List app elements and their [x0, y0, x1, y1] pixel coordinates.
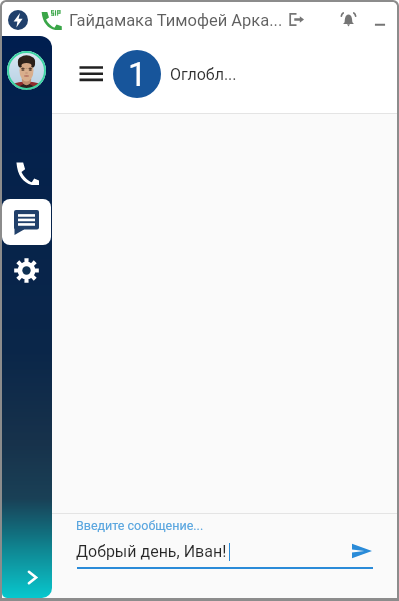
button[interactable]: Calls: [14, 160, 40, 186]
staticText: Введите сообщение...: [76, 518, 204, 533]
button[interactable]: Notifications: [336, 7, 360, 31]
button[interactable]: Minimize: [369, 9, 391, 31]
button[interactable]: Chats: [2, 199, 51, 245]
staticText: Оглобл...: [170, 65, 237, 84]
button[interactable]: Menu: [74, 61, 108, 87]
button[interactable]: Settings: [13, 257, 40, 284]
staticText: 1: [128, 55, 147, 94]
button[interactable]: Profile: [7, 51, 46, 90]
staticText: Гайдамака Тимофей Арка...: [69, 11, 283, 30]
button[interactable]: Contact 1: [113, 50, 161, 98]
button[interactable]: Expand navigation: [20, 565, 44, 589]
button[interactable]: Log out: [285, 8, 308, 31]
button[interactable]: Send: [348, 537, 375, 564]
staticText: Добрый день, Иван!: [76, 542, 227, 561]
